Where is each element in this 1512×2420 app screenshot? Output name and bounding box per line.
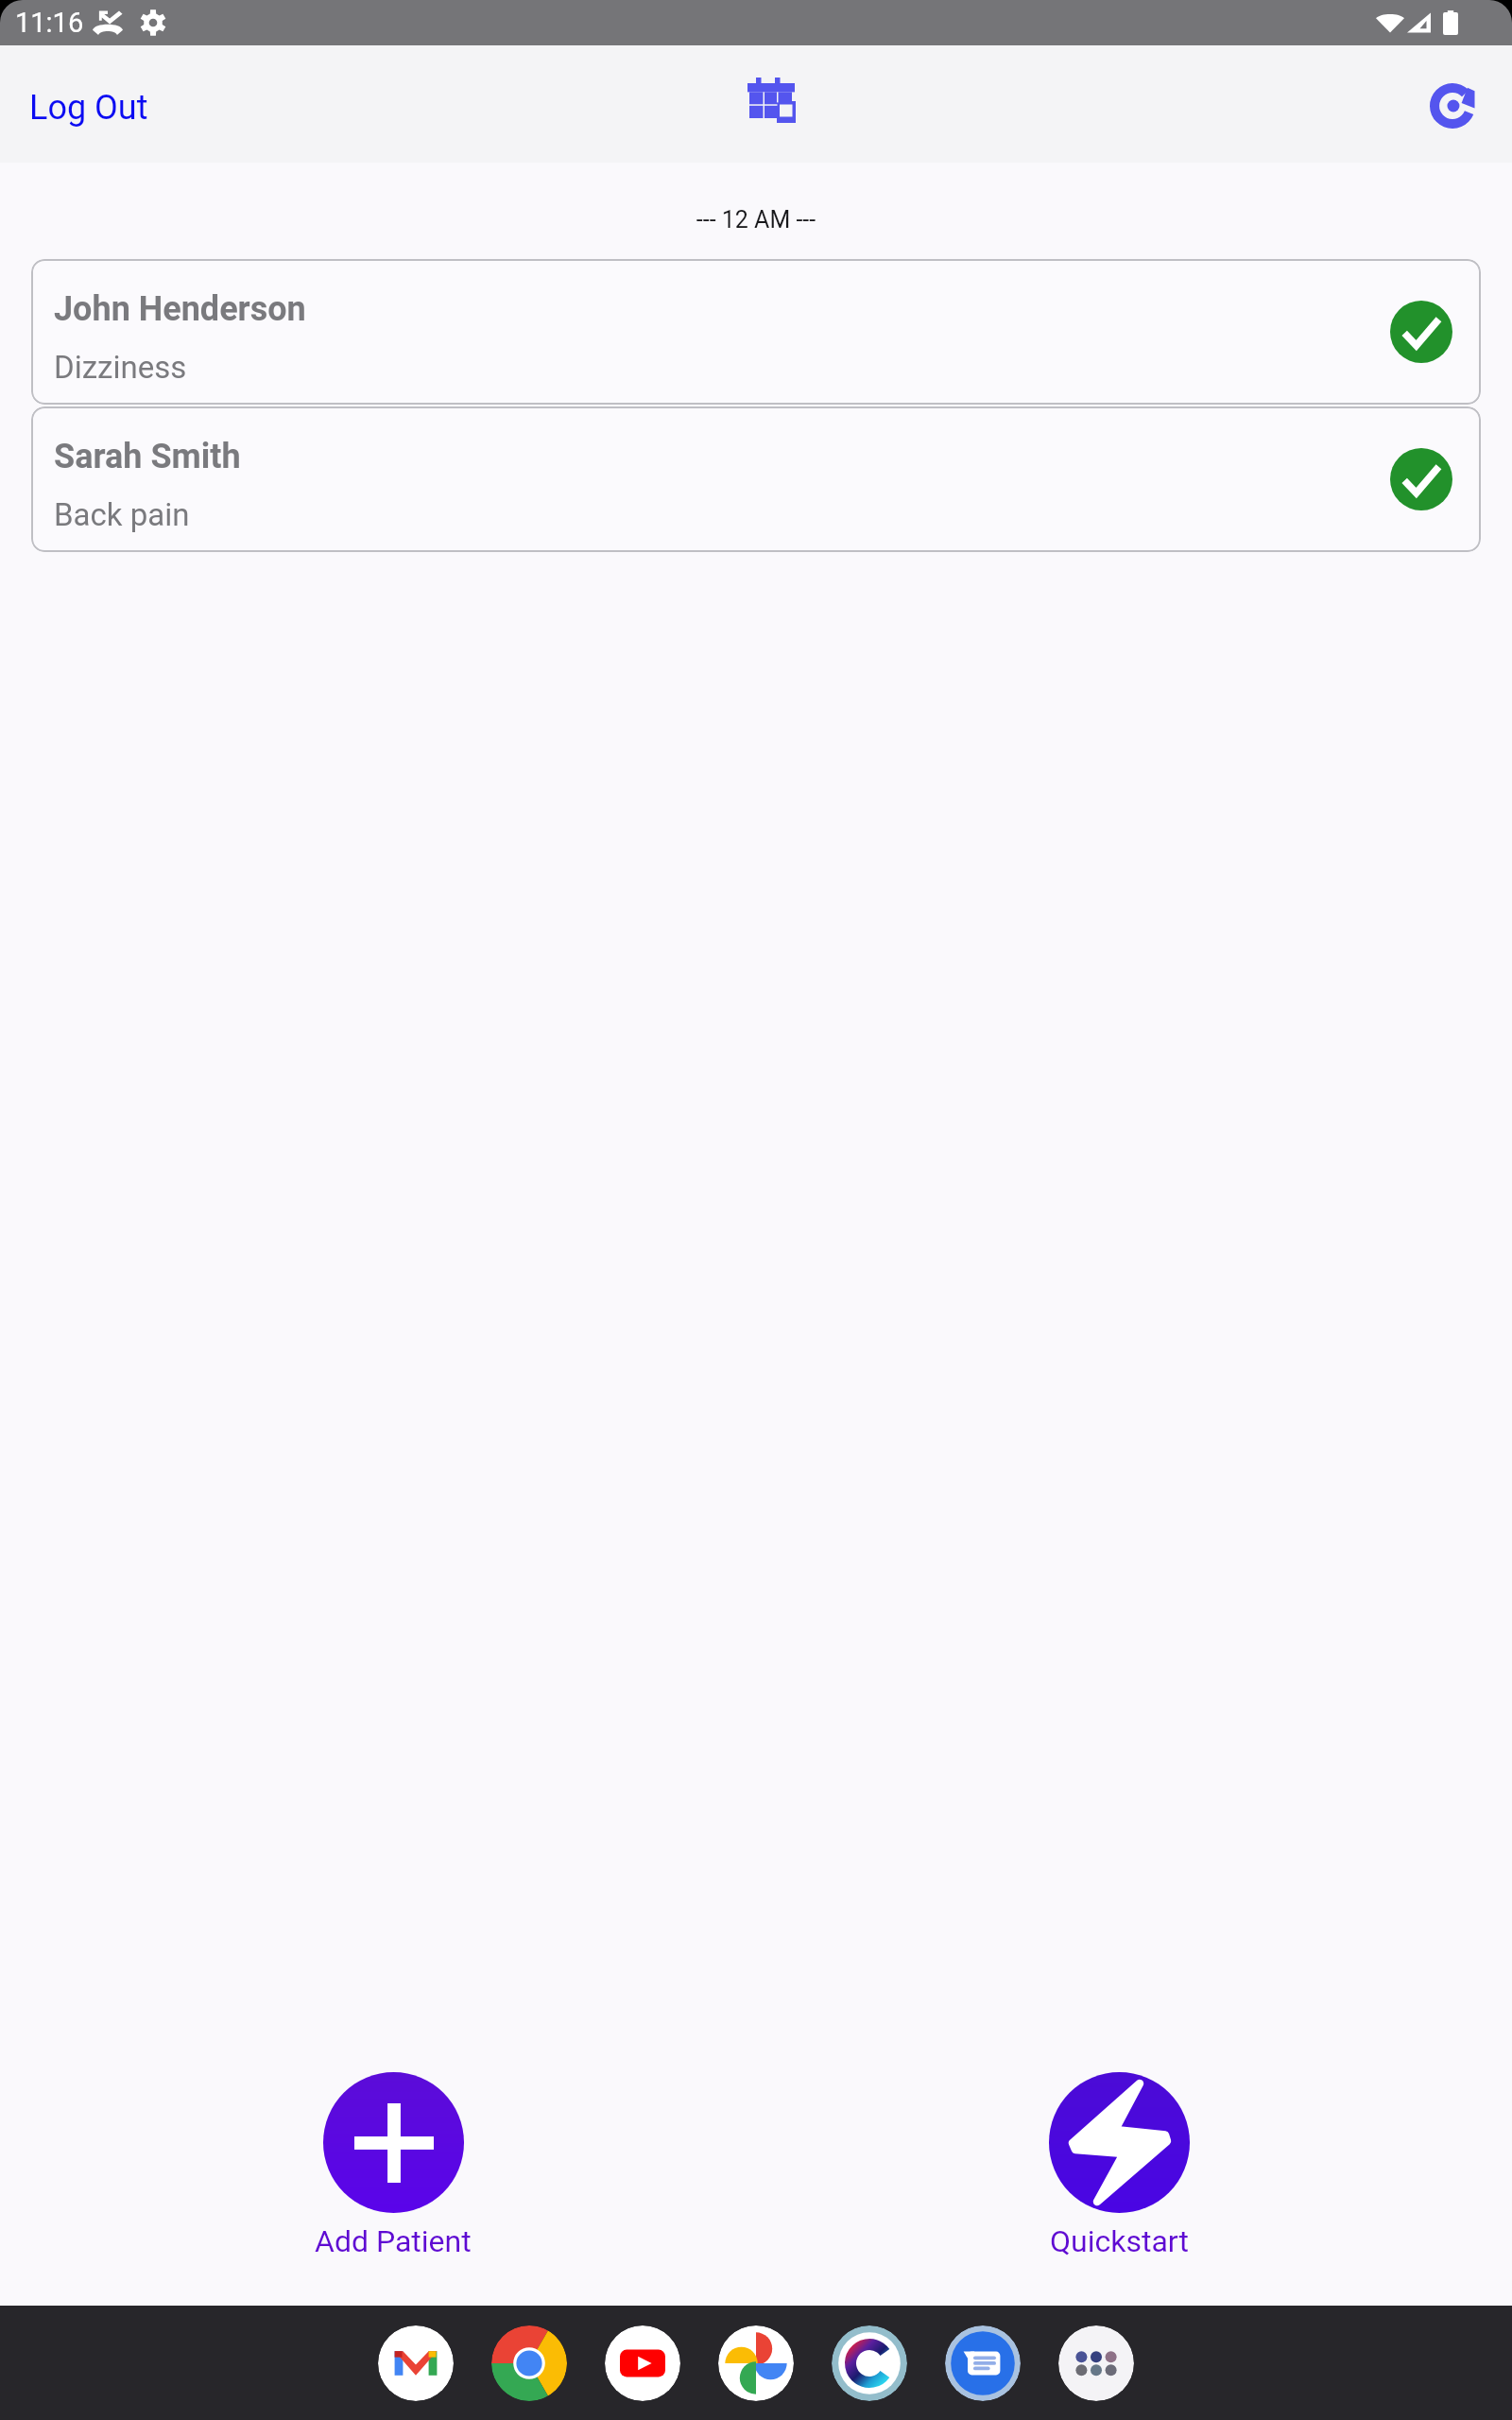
button[interactable]: Gmail bbox=[378, 2325, 454, 2401]
button[interactable]: Camera bbox=[832, 2325, 907, 2401]
staticText: Sarah Smith bbox=[54, 437, 241, 476]
other: Completed bbox=[1390, 448, 1452, 510]
button[interactable]: Messages bbox=[945, 2325, 1021, 2401]
staticText: Log Out bbox=[29, 88, 148, 128]
staticText: Back pain bbox=[54, 496, 190, 533]
button[interactable]: All apps bbox=[1058, 2325, 1134, 2401]
button[interactable]: Refresh bbox=[1420, 74, 1485, 138]
staticText: 11:16 bbox=[15, 7, 84, 39]
staticText: Dizziness bbox=[54, 349, 187, 386]
button[interactable]: Chrome bbox=[491, 2325, 567, 2401]
staticText: Quickstart bbox=[1050, 2223, 1189, 2257]
button[interactable]: Calendar bbox=[736, 66, 807, 134]
button[interactable]: Add Patient bbox=[315, 2072, 472, 2257]
staticText: Add Patient bbox=[315, 2223, 472, 2257]
button[interactable]: Photos bbox=[718, 2325, 794, 2401]
button[interactable]: Sarah Smith bbox=[31, 406, 1481, 552]
button[interactable]: Log Out bbox=[10, 78, 167, 137]
other: Completed bbox=[1390, 301, 1452, 363]
staticText: --- 12 AM --- bbox=[0, 206, 1512, 233]
button[interactable]: Quickstart bbox=[1049, 2072, 1190, 2257]
staticText: John Henderson bbox=[54, 289, 306, 329]
button[interactable]: YouTube bbox=[605, 2325, 680, 2401]
button[interactable]: John Henderson bbox=[31, 259, 1481, 405]
